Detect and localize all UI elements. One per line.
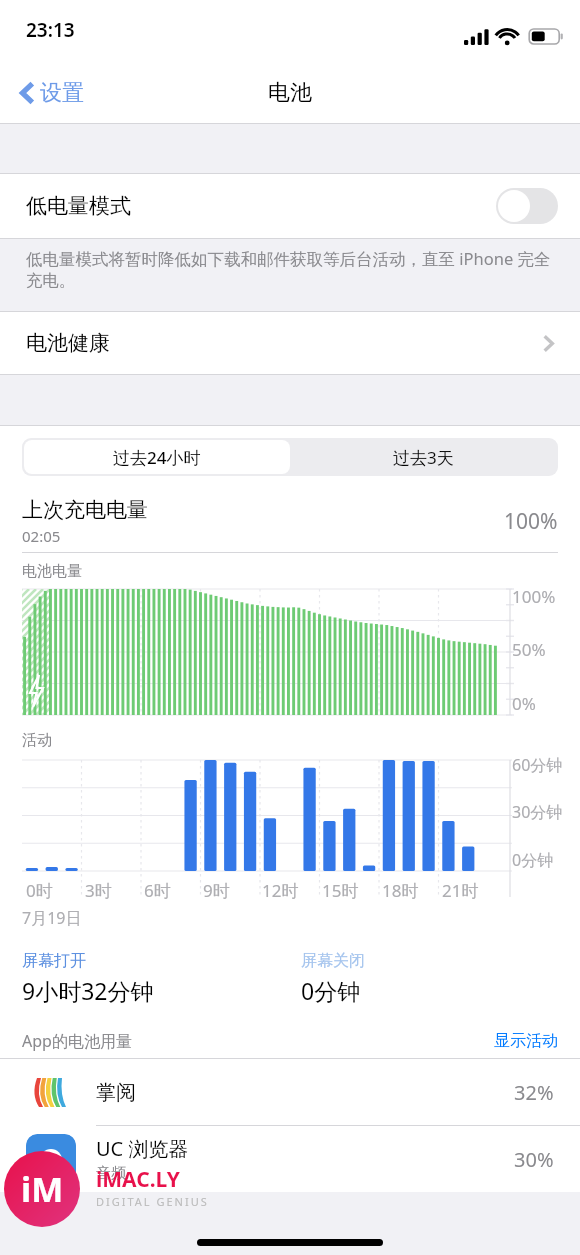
staticText: 设置 bbox=[40, 79, 84, 107]
staticText: 100% bbox=[512, 585, 556, 608]
staticText: 0时 bbox=[26, 879, 53, 902]
staticText: 30% bbox=[514, 1146, 554, 1173]
button[interactable]: 过去24小时 bbox=[24, 440, 290, 474]
button[interactable]: 掌阅 bbox=[0, 1059, 580, 1125]
staticText: 60分钟 bbox=[512, 754, 563, 776]
staticText: 9时 bbox=[203, 879, 230, 902]
staticText: App的电池用量 bbox=[22, 1030, 132, 1052]
staticText: 低电量模式将暂时降低如下载和邮件获取等后台活动，直至 iPhone 完全充电。 bbox=[26, 247, 558, 291]
staticText: iM bbox=[21, 1166, 64, 1212]
staticText: 过去24小时 bbox=[113, 446, 201, 469]
button[interactable]: 低电量模式 bbox=[0, 174, 580, 238]
staticText: UC 浏览器 bbox=[96, 1135, 189, 1162]
staticText: 上次充电电量 bbox=[22, 497, 148, 523]
staticText: 7月19日 bbox=[22, 907, 82, 929]
staticText: iMAC.LY bbox=[96, 1165, 180, 1194]
staticText: 电池健康 bbox=[26, 330, 110, 356]
staticText: 15时 bbox=[322, 879, 359, 902]
button[interactable]: 显示活动 bbox=[472, 1028, 580, 1054]
staticText: DIGITAL GENIUS bbox=[96, 1194, 209, 1209]
staticText: 50% bbox=[512, 638, 546, 661]
button[interactable]: 低电量模式开关 bbox=[496, 188, 558, 224]
button[interactable]: 设置 bbox=[14, 75, 90, 111]
staticText: 屏幕打开 bbox=[22, 951, 86, 971]
staticText: 显示活动 bbox=[494, 1031, 558, 1051]
staticText: 3时 bbox=[85, 879, 112, 902]
staticText: 活动 bbox=[22, 731, 52, 750]
staticText: 9小时32分钟 bbox=[22, 975, 154, 1006]
button[interactable]: 电池健康 bbox=[0, 312, 580, 374]
staticText: 0% bbox=[512, 692, 536, 715]
staticText: 30分钟 bbox=[512, 801, 563, 823]
button[interactable]: UC 浏览器 bbox=[0, 1126, 580, 1192]
staticText: 18时 bbox=[382, 879, 419, 902]
staticText: 掌阅 bbox=[96, 1080, 136, 1105]
staticText: 21时 bbox=[442, 879, 479, 902]
staticText: 过去3天 bbox=[393, 446, 454, 469]
staticText: 电池 bbox=[268, 79, 312, 107]
staticText: 音频 bbox=[96, 1164, 126, 1183]
staticText: 电池电量 bbox=[22, 562, 82, 581]
button[interactable]: 过去3天 bbox=[290, 440, 556, 474]
staticText: 6时 bbox=[144, 879, 171, 902]
staticText: 32% bbox=[514, 1079, 554, 1106]
staticText: 12时 bbox=[262, 879, 299, 902]
staticText: 低电量模式 bbox=[26, 193, 131, 219]
staticText: 23:13 bbox=[26, 17, 75, 43]
staticText: 100% bbox=[504, 507, 558, 536]
staticText: 0分钟 bbox=[301, 975, 361, 1006]
staticText: 0分钟 bbox=[512, 849, 554, 871]
staticText: 屏幕关闭 bbox=[301, 951, 365, 971]
staticText: 02:05 bbox=[22, 526, 61, 546]
